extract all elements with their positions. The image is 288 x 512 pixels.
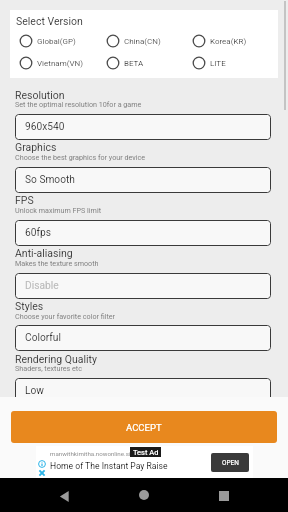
staticText: Styles — [15, 300, 44, 312]
staticText: Rendering Quality — [15, 353, 97, 365]
staticText: Low — [25, 385, 44, 397]
button[interactable]: Colorful — [15, 325, 271, 351]
staticText: Home of The Instant Pay Raise — [50, 461, 168, 471]
button[interactable]: Low — [15, 378, 271, 404]
staticText: FPS — [15, 194, 34, 206]
staticText: Unlock maximum FPS limit — [15, 206, 101, 214]
button[interactable]: 960x540 — [15, 114, 271, 140]
staticText: ACCEPT — [126, 422, 162, 433]
button[interactable]: Vietnam(VN) — [19, 56, 84, 70]
staticText: Makes the texture smooth — [15, 259, 99, 267]
button[interactable]: Global(GP) — [19, 34, 76, 48]
staticText: Graphics — [15, 141, 57, 153]
staticText: Select Version — [16, 15, 83, 27]
button[interactable]: Korea(KR) — [192, 34, 247, 48]
staticText: Choose the best graphics for your device — [15, 153, 146, 161]
staticText: Resolution — [15, 89, 65, 101]
staticText: Vietnam(VN) — [37, 59, 84, 68]
button[interactable]: Home — [132, 483, 156, 507]
staticText: Test Ad — [133, 448, 159, 457]
staticText: Global(GP) — [37, 37, 76, 46]
staticText: Colorful — [25, 332, 61, 344]
button[interactable]: OPEN — [211, 453, 249, 472]
staticText: OPEN — [222, 459, 239, 467]
button[interactable]: Back — [52, 484, 76, 508]
button[interactable]: ACCEPT — [11, 411, 277, 443]
button[interactable]: Disable — [15, 273, 271, 299]
staticText: China(CN) — [124, 37, 161, 46]
button[interactable]: Recent apps — [212, 484, 236, 508]
staticText: Disable — [25, 280, 59, 292]
staticText: Korea(KR) — [210, 37, 247, 46]
staticText: BETA — [124, 59, 144, 68]
button[interactable]: BETA — [106, 56, 144, 70]
staticText: 60fps — [25, 227, 51, 239]
staticText: Choose your favorite color filter — [15, 312, 116, 320]
staticText: 960x540 — [25, 121, 65, 133]
staticText: Set the optimal resolution 10for a game — [15, 100, 142, 108]
button[interactable]: China(CN) — [106, 34, 161, 48]
button[interactable]: 60fps — [15, 220, 271, 246]
staticText: Anti-aliasing — [15, 247, 73, 259]
staticText: manwithkimitha.nowonline.site — [50, 450, 136, 457]
staticText: Shaders, textures etc — [15, 364, 82, 372]
staticText: LITE — [210, 59, 226, 68]
staticText: So Smooth — [25, 174, 75, 186]
button[interactable]: LITE — [192, 56, 226, 70]
button[interactable]: So Smooth — [15, 167, 271, 193]
